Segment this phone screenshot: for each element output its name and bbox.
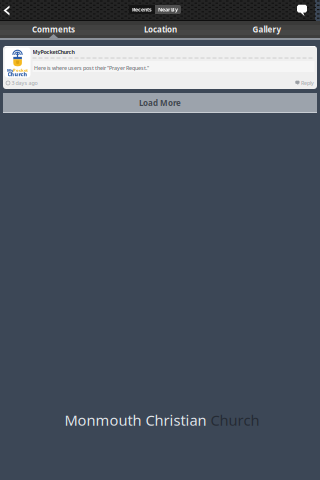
staticText: 3 days ago [11,79,37,87]
staticText: Church [7,71,27,78]
button[interactable]: Location [107,21,214,38]
button[interactable]: Near By [155,5,181,14]
button[interactable]: Messages [291,0,313,21]
staticText: Reply [301,79,314,87]
staticText: My [7,68,13,73]
staticText: Monmouth Christian [64,410,210,430]
staticText: Pocket [13,68,28,73]
staticText: Near By [158,6,178,13]
staticText: MyPocketChurch [32,48,74,55]
staticText: Here is where users post their "Prayer R… [34,64,149,71]
staticText: Comments [32,24,75,35]
button[interactable]: Load More [3,93,317,113]
staticText: Load More [139,98,181,108]
staticText: Gallery [252,24,281,35]
staticText: Location [144,24,177,35]
staticText: Church [210,410,259,430]
staticText: Recents [132,6,152,13]
button[interactable]: Recents [129,5,155,14]
button[interactable]: Back [0,0,18,21]
button[interactable]: Comments [0,21,107,38]
button[interactable]: Gallery [214,21,320,38]
